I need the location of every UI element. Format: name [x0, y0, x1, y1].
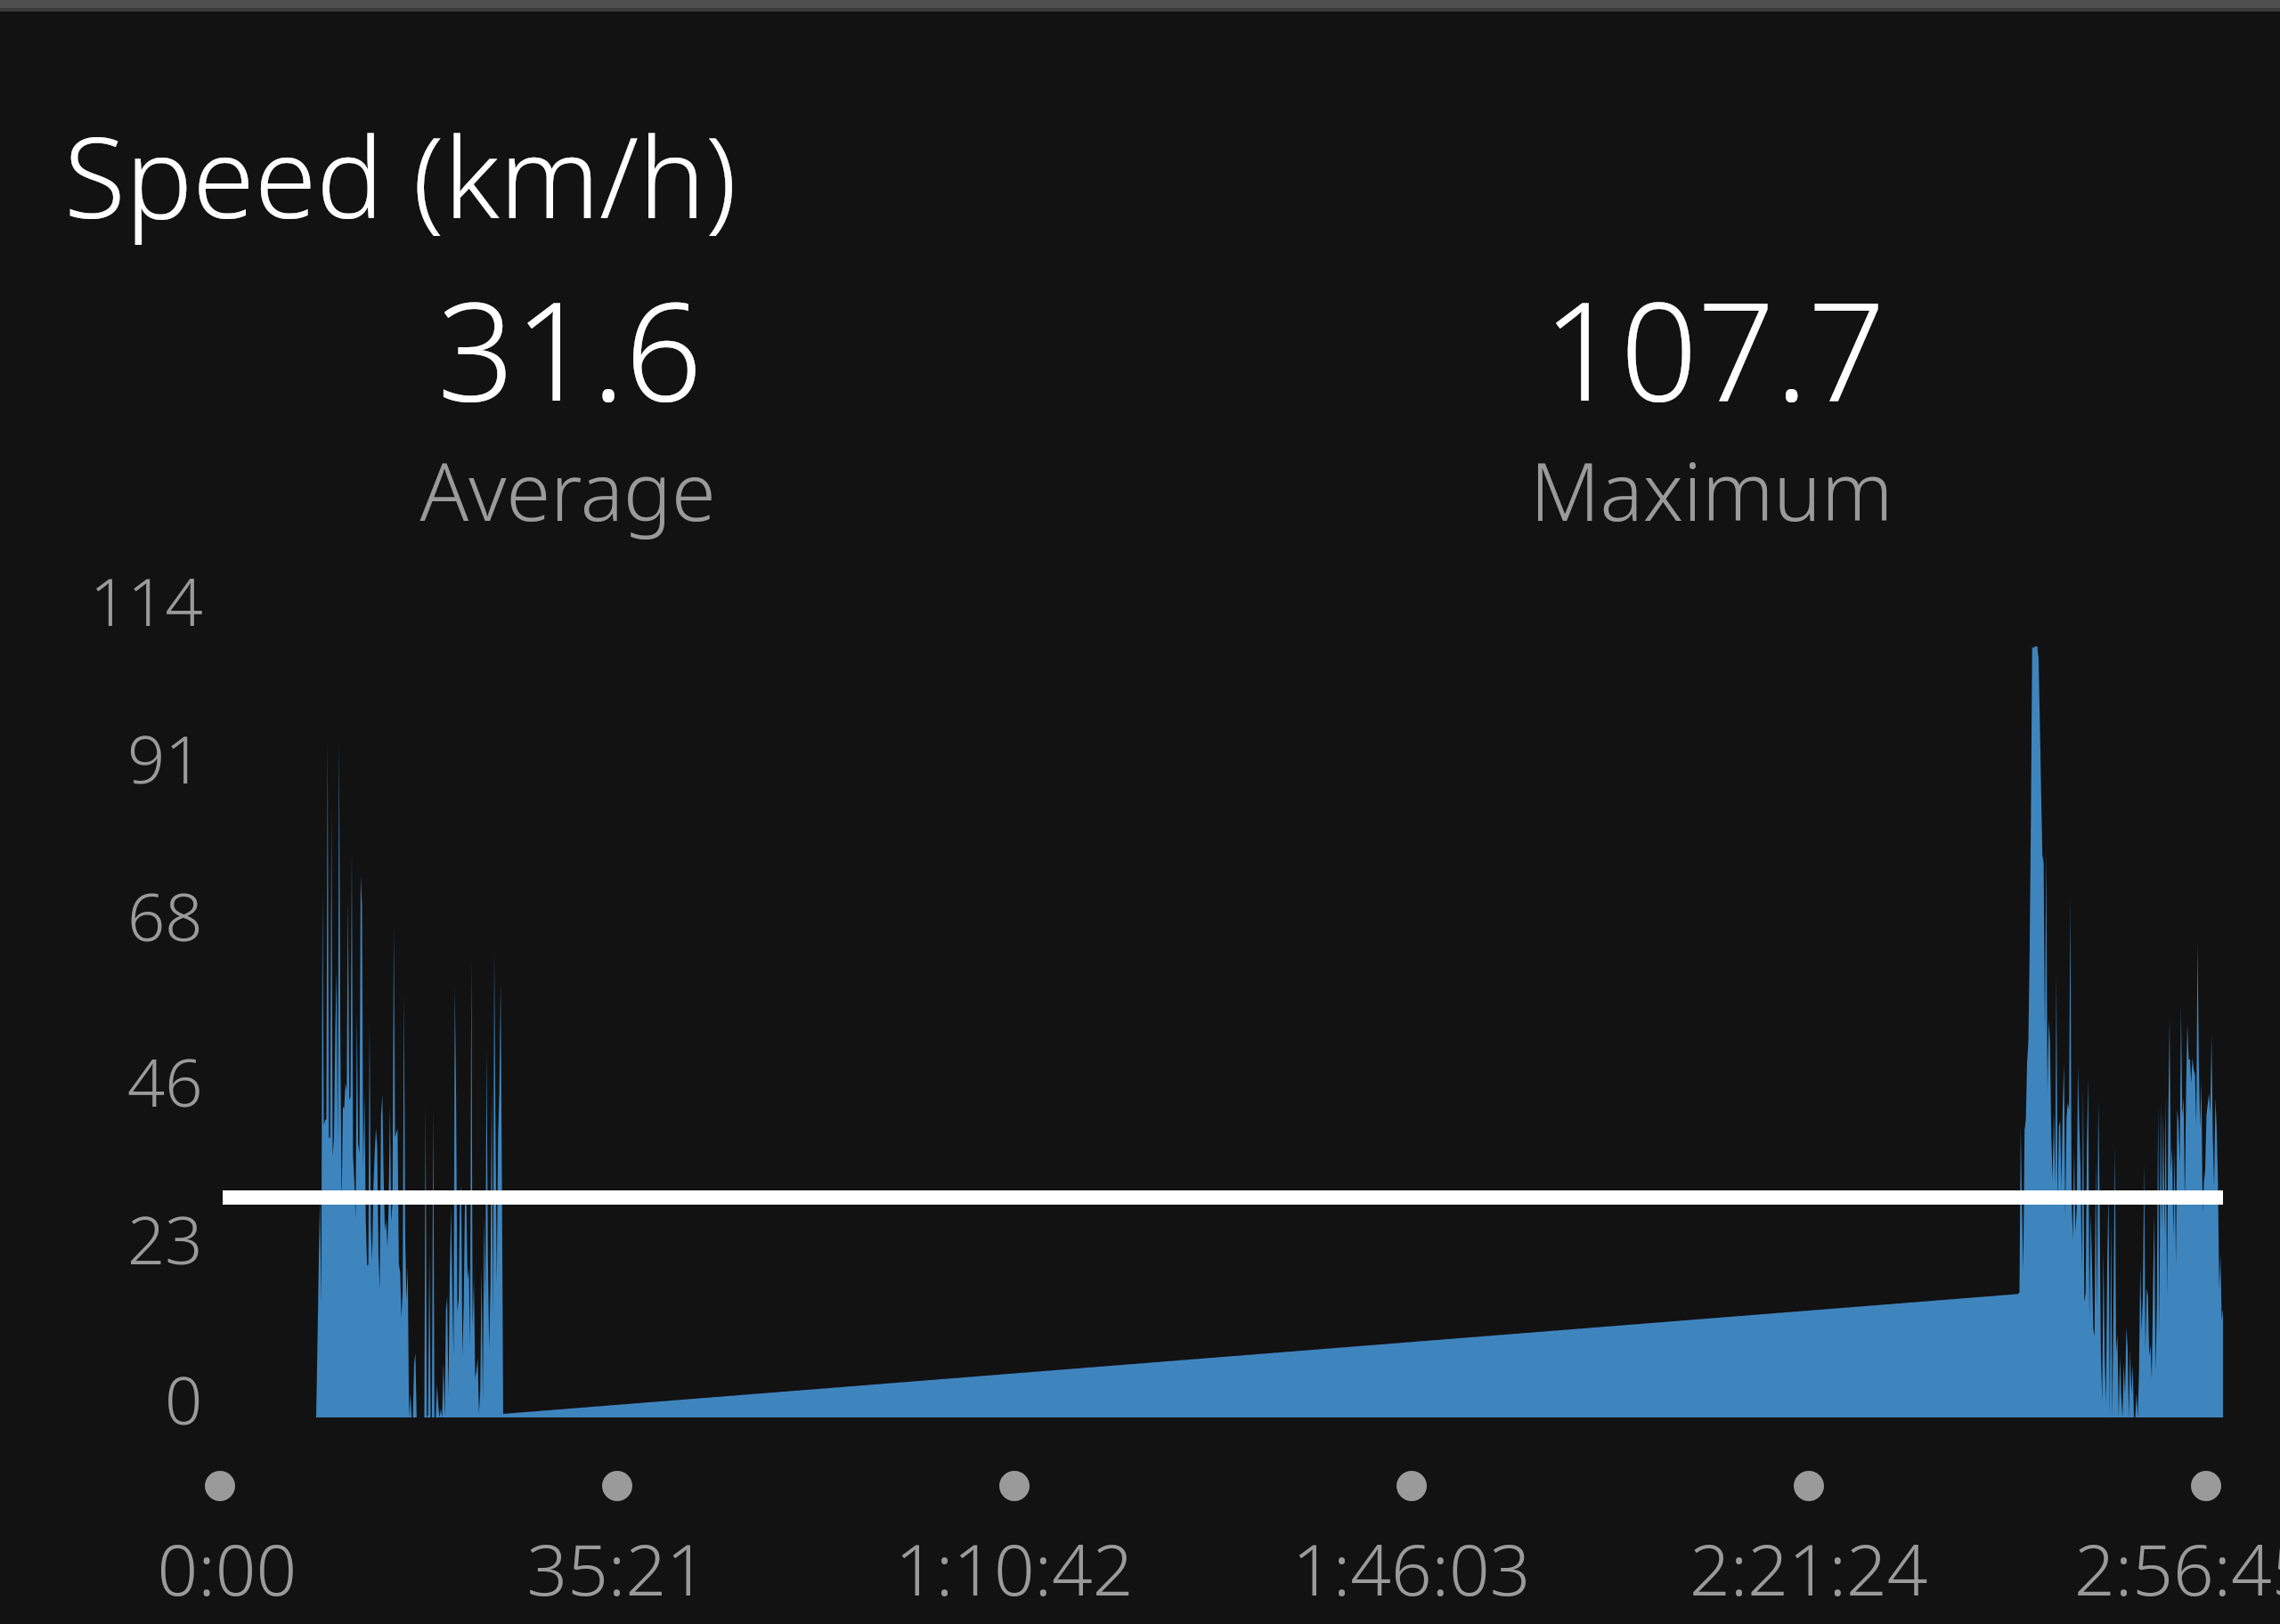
button[interactable]: Speed chart — [0, 0, 2280, 1624]
